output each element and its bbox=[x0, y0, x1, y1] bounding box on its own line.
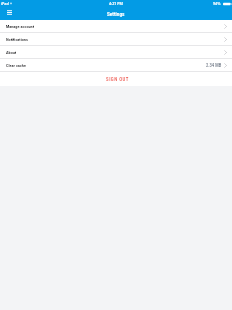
staticText: Settings bbox=[107, 11, 125, 17]
button[interactable]: About bbox=[0, 46, 232, 59]
button[interactable]: Manage account bbox=[0, 20, 232, 33]
staticText: About bbox=[6, 50, 17, 55]
staticText: SIGN OUT bbox=[106, 76, 129, 82]
button[interactable]: SIGN OUT bbox=[0, 72, 232, 86]
staticText: 94% bbox=[213, 1, 221, 6]
staticText: 2.34 MB bbox=[206, 63, 222, 68]
staticText: 4:21 PM bbox=[109, 1, 123, 6]
staticText: Notifications bbox=[6, 37, 28, 42]
staticText: Manage account bbox=[6, 24, 34, 29]
button[interactable]: Open navigation menu bbox=[0, 7, 19, 18]
button[interactable]: Notifications bbox=[0, 33, 232, 46]
button[interactable]: Clear cache bbox=[0, 59, 232, 72]
staticText: iPad bbox=[1, 1, 9, 6]
staticText: Clear cache bbox=[6, 63, 26, 68]
